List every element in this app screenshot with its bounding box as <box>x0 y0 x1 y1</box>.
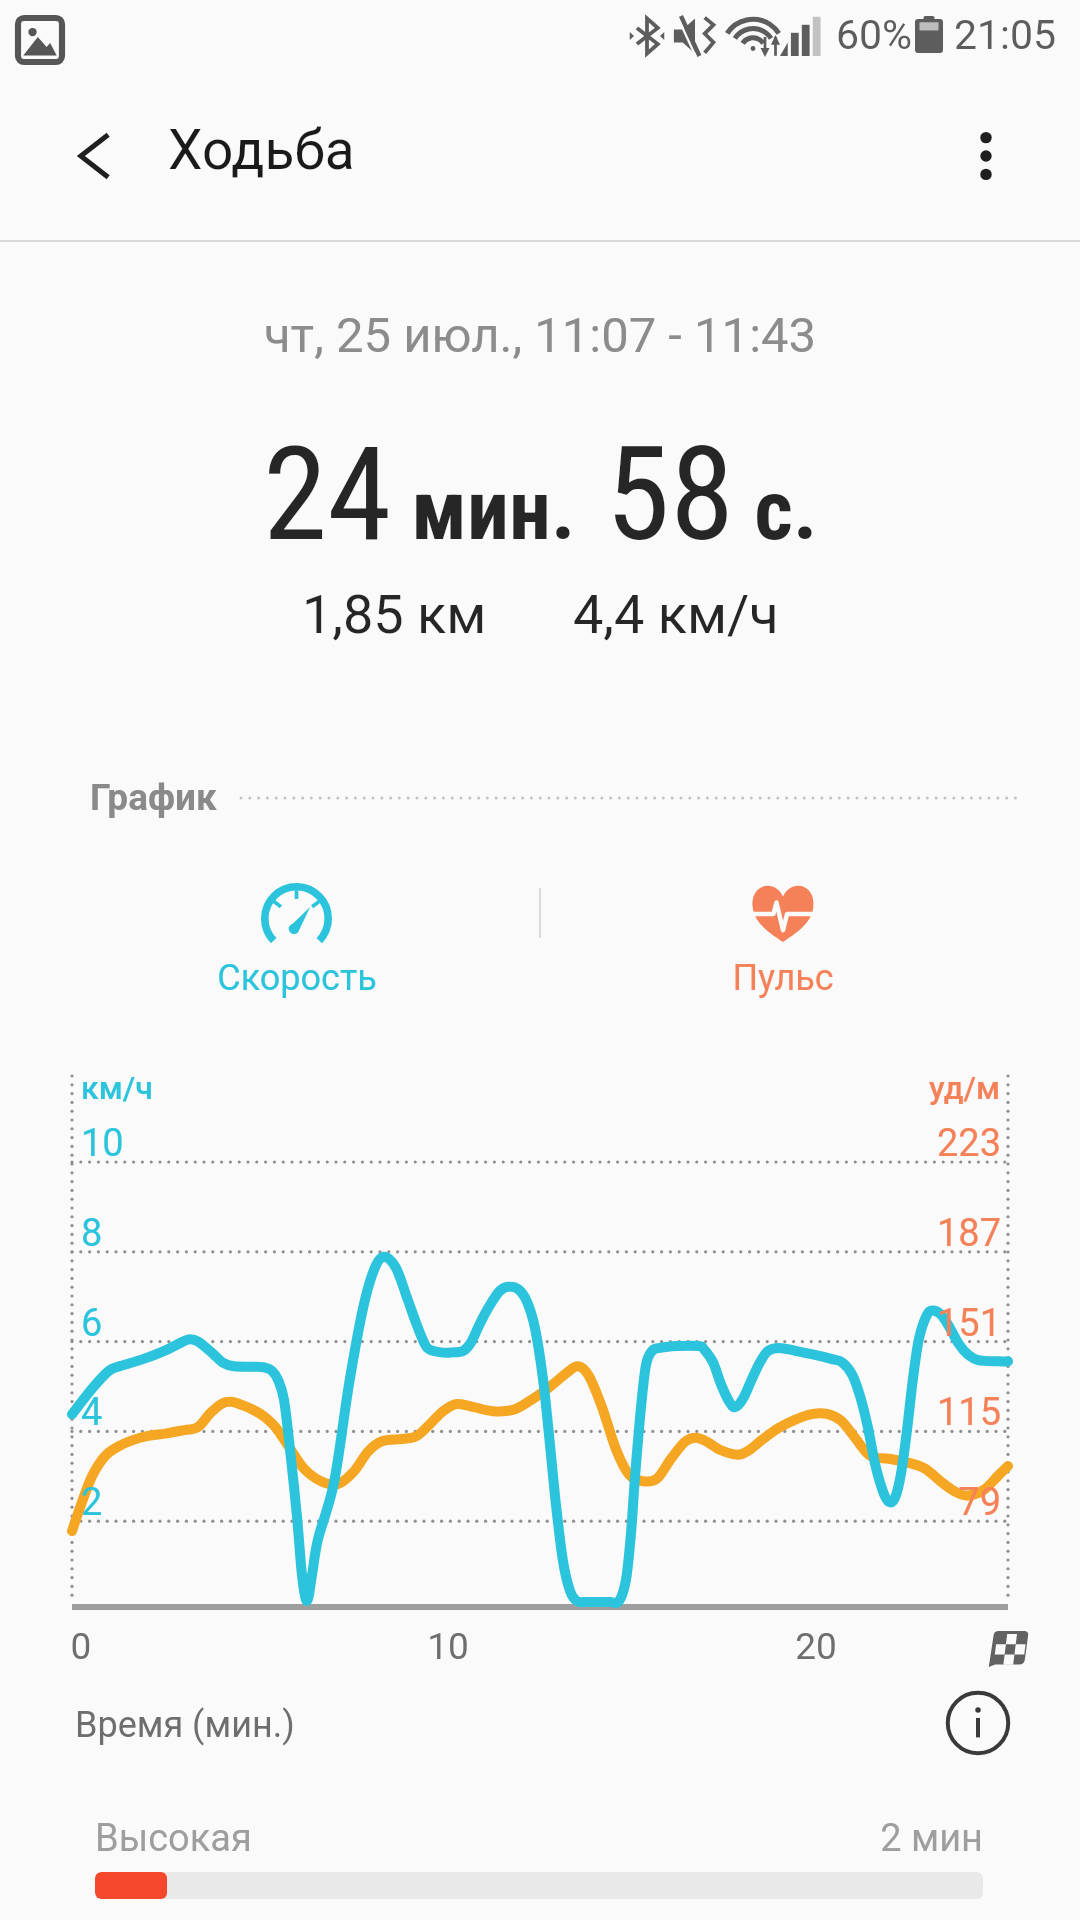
staticText: График <box>90 776 217 819</box>
staticText: 151 <box>824 1301 1001 1346</box>
staticText: 4,4 км/ч <box>573 583 779 646</box>
button[interactable]: Back <box>58 118 134 194</box>
staticText: 8 <box>81 1211 103 1256</box>
staticText: 187 <box>824 1211 1001 1256</box>
staticText: 2 мин <box>700 1816 983 1861</box>
staticText: 20 <box>776 1625 856 1668</box>
staticText: Пульс <box>672 957 894 999</box>
staticText: 79 <box>824 1480 1001 1525</box>
staticText: 0 <box>41 1625 121 1668</box>
staticText: Высокая <box>95 1816 252 1861</box>
staticText: 223 <box>824 1121 1001 1166</box>
staticText: с. <box>735 461 818 559</box>
button[interactable]: Info <box>942 1687 1014 1759</box>
button[interactable]: Скорость <box>186 862 408 1002</box>
staticText: 1,85 км <box>302 583 487 646</box>
staticText: Время (мин.) <box>75 1704 295 1746</box>
button[interactable]: More options <box>948 118 1024 194</box>
staticText: уд/м <box>853 1069 1000 1107</box>
staticText: 4 <box>81 1390 103 1435</box>
staticText: 10 <box>408 1625 488 1668</box>
staticText: 2 <box>81 1480 103 1525</box>
staticText: км/ч <box>81 1069 153 1107</box>
staticText: 6 <box>81 1301 103 1346</box>
staticText: 60% <box>836 11 913 59</box>
staticText: Скорость <box>186 957 408 999</box>
staticText: 21:05 <box>954 11 1057 59</box>
staticText: 58 <box>576 418 735 570</box>
staticText: Ходьба <box>168 118 355 182</box>
button[interactable]: Пульс <box>672 862 894 1002</box>
staticText: 24 <box>263 418 392 570</box>
staticText: чт, 25 июл., 11:07 - 11:43 <box>0 307 1080 364</box>
staticText: 10 <box>81 1121 124 1166</box>
staticText: 115 <box>824 1390 1001 1435</box>
staticText: мин. <box>392 461 576 559</box>
